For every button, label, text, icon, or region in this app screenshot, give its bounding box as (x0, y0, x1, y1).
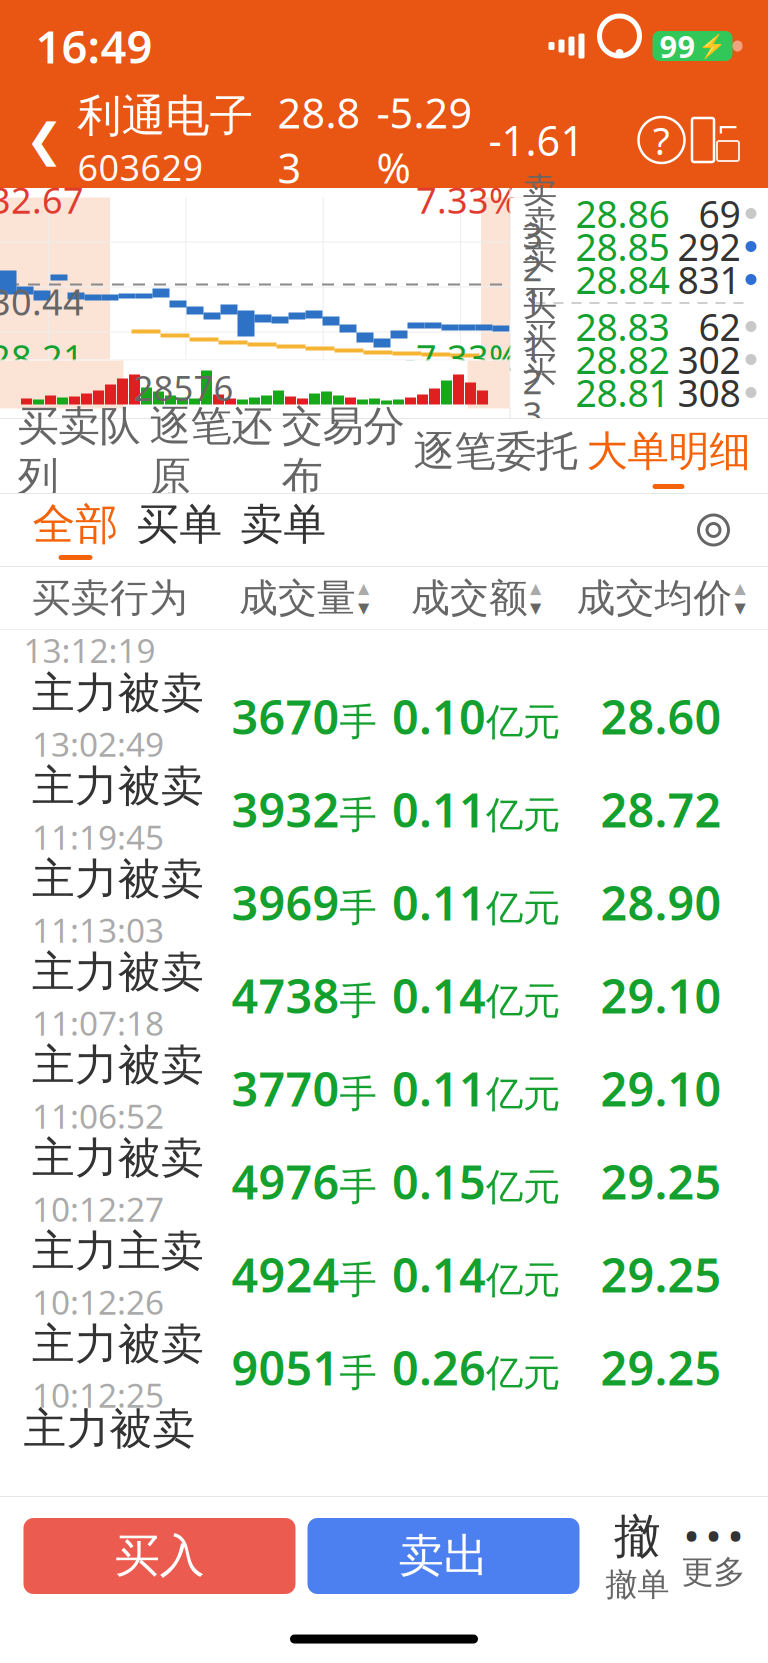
staticText: 29.10 (600, 1057, 721, 1119)
button[interactable]: 成交额 (411, 574, 541, 622)
staticText: 0.11 (392, 1057, 486, 1119)
staticText: 买1 (522, 282, 557, 371)
staticText: 亿元 (486, 1350, 560, 1396)
staticText: ? (653, 114, 670, 166)
staticText: 利通电子 (77, 89, 253, 143)
button[interactable]: 买1 (522, 310, 756, 343)
staticText: 0.11 (392, 871, 486, 933)
button[interactable]: 买入 (23, 1518, 295, 1594)
staticText: ▲ (530, 580, 541, 596)
button[interactable]: 买3 (522, 376, 756, 409)
button[interactable]: 卖单 (231, 494, 335, 566)
staticText: 成交均价 (576, 574, 732, 622)
staticText: 292 (677, 222, 740, 271)
staticText: 交易分布 (281, 401, 404, 502)
staticText: 卖2 (522, 202, 557, 291)
staticText: 手 (339, 1071, 376, 1117)
button[interactable]: 卖出 (307, 1518, 579, 1594)
staticText: 全部 (32, 498, 118, 551)
button[interactable]: 交易分布 (281, 419, 404, 493)
button[interactable]: 大单明细 (586, 419, 750, 493)
staticText: 99 (659, 26, 695, 66)
staticText: • • • (685, 1512, 742, 1558)
staticText: 主力主卖 (32, 1225, 204, 1278)
staticText: ▲ (734, 580, 745, 596)
staticText: 4738 (231, 964, 339, 1026)
button[interactable]: 主力被卖 (8, 856, 760, 949)
staticText: 亿元 (486, 978, 560, 1024)
staticText: 撤 (614, 1508, 661, 1565)
staticText: 32.67 (0, 176, 84, 224)
staticText: 手 (339, 1350, 376, 1396)
button[interactable]: 主力被卖 (8, 763, 760, 856)
staticText: 11:07:18 (32, 1001, 164, 1045)
staticText: 11:13:03 (32, 908, 164, 952)
staticText: 买3 (522, 348, 557, 437)
button[interactable]: 返回 (13, 103, 75, 177)
staticText: 主力被卖 (32, 946, 204, 999)
staticText: 7.33% (416, 176, 519, 224)
staticText: -7.33% (404, 333, 519, 381)
staticText: 11:19:45 (32, 815, 164, 859)
button[interactable]: 横屏 (684, 111, 746, 169)
button[interactable]: 主力主卖 (8, 1228, 760, 1321)
button[interactable]: 主力被卖 (8, 1321, 760, 1414)
button[interactable]: 撤 (600, 1517, 674, 1595)
staticText: 9051 (231, 1336, 339, 1398)
button[interactable]: 主力被卖 (8, 670, 760, 763)
button[interactable]: 主力被卖 (8, 949, 760, 1042)
button[interactable]: 逐笔委托 (413, 419, 577, 493)
staticText: 主力被卖 (32, 760, 204, 813)
button[interactable]: 卖3 (522, 197, 756, 230)
button[interactable]: 成交量 (239, 574, 369, 622)
button[interactable]: 卖2 (522, 230, 756, 263)
staticText: -1.61 (488, 113, 584, 167)
staticText: 亿元 (486, 1257, 560, 1303)
staticText: 28.84 (575, 255, 669, 304)
staticText: 更多 (681, 1552, 745, 1592)
staticText: 831 (677, 255, 740, 304)
staticText: 603629 (77, 143, 203, 191)
staticText: 28.85 (575, 222, 669, 271)
button[interactable]: 主力被卖 (8, 1042, 760, 1135)
staticText: 28576 (133, 364, 233, 410)
button[interactable]: 帮助 (638, 117, 684, 163)
staticText: 28.86 (575, 189, 669, 238)
staticText: 主力被卖 (32, 1039, 204, 1092)
button[interactable]: 全部 (23, 494, 127, 566)
staticText: 卖单 (240, 498, 326, 551)
staticText: ⚡ (697, 33, 725, 59)
staticText: 13:02:49 (32, 722, 164, 766)
staticText: 28.83 (575, 302, 669, 351)
staticText: -5.29% (376, 85, 472, 195)
staticText: 手 (339, 792, 376, 838)
staticText: 撤单 (605, 1565, 669, 1604)
staticText: 0.14 (392, 1243, 486, 1305)
staticText: 亿元 (486, 699, 560, 745)
staticText: 10:12:27 (32, 1187, 164, 1231)
staticText: 0.26 (392, 1336, 486, 1398)
button[interactable]: 买2 (522, 343, 756, 376)
button[interactable]: 买卖队列 (17, 419, 140, 493)
staticText: 0.15 (392, 1150, 486, 1212)
button[interactable]: 主力被卖 (8, 1135, 760, 1228)
staticText: 亿元 (486, 792, 560, 838)
staticText: 30.44 (0, 278, 84, 325)
button[interactable]: 卖1 (522, 263, 756, 296)
staticText: 卖出 (398, 1528, 488, 1584)
staticText: 0.10 (392, 685, 486, 747)
staticText: 28.90 (600, 871, 721, 933)
button[interactable]: 成交均价 (576, 574, 745, 622)
staticText: 逐笔委托 (413, 426, 577, 477)
staticText: ▼ (358, 599, 369, 616)
button[interactable]: • • • (674, 1517, 752, 1595)
staticText: 28.60 (600, 685, 721, 747)
staticText: 买卖行为 (32, 574, 188, 622)
staticText: 买单 (136, 498, 222, 551)
staticText: ▼ (530, 599, 541, 616)
staticText: 28.72 (600, 778, 721, 840)
button[interactable]: 设置 (684, 501, 742, 559)
staticText: 0.11 (392, 778, 486, 840)
button[interactable]: 买单 (127, 494, 231, 566)
button[interactable]: 逐笔还原 (149, 419, 272, 493)
